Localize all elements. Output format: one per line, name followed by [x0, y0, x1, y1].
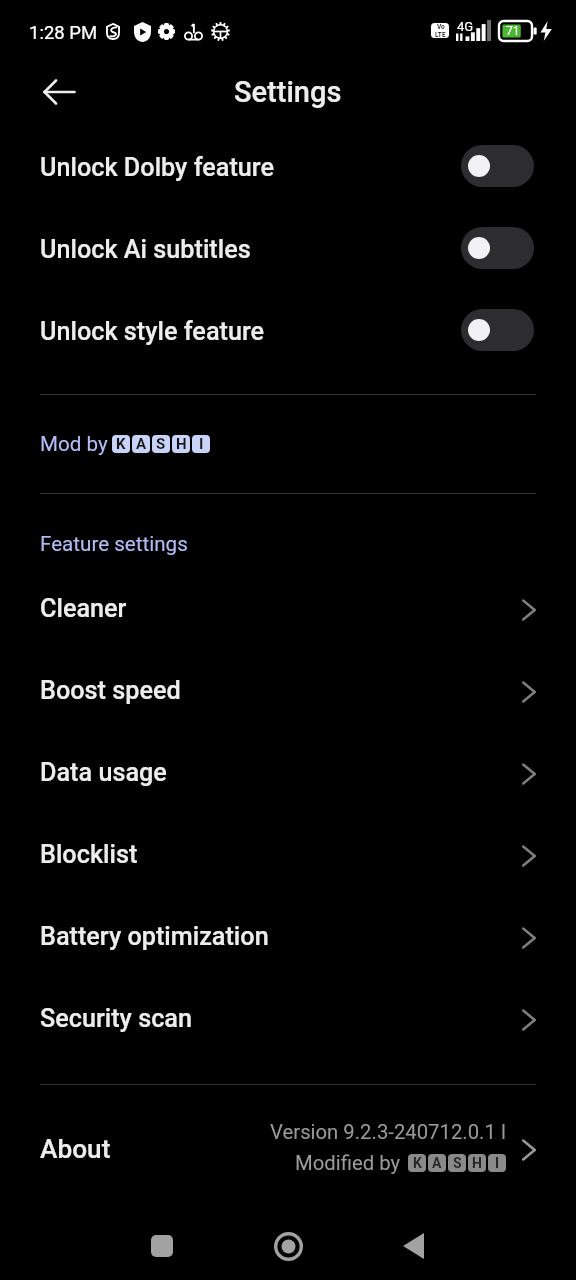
- button[interactable]: Back: [387, 1220, 439, 1272]
- staticText: Modified by: [295, 1151, 401, 1175]
- staticText: H: [472, 1155, 482, 1171]
- staticText: Boost speed: [40, 676, 514, 706]
- staticText: Unlock Ai subtitles: [40, 235, 463, 265]
- staticText: S: [453, 1155, 462, 1171]
- staticText: Mod by: [40, 432, 108, 456]
- button[interactable]: Back: [36, 69, 82, 115]
- staticText: Feature settings: [40, 532, 188, 556]
- staticText: Vo: [437, 23, 445, 31]
- staticText: I: [495, 1155, 500, 1171]
- staticText: Battery optimization: [40, 922, 514, 952]
- staticText: Settings: [234, 75, 342, 109]
- staticText: Version 9.2.3-240712.0.1 l: [270, 1120, 506, 1144]
- button[interactable]: Blocklist: [0, 812, 576, 894]
- staticText: Data usage: [40, 758, 514, 788]
- staticText: Cleaner: [40, 594, 514, 624]
- staticText: Unlock Dolby feature: [40, 153, 463, 183]
- staticText: K: [413, 1155, 422, 1171]
- staticText: S: [156, 435, 166, 453]
- staticText: H: [176, 435, 187, 453]
- button[interactable]: Home: [262, 1220, 314, 1272]
- button[interactable]: Security scan: [0, 976, 576, 1058]
- staticText: A: [432, 1155, 442, 1171]
- button[interactable]: Cleaner: [0, 566, 576, 648]
- staticText: 4G: [457, 19, 474, 34]
- staticText: About: [40, 1134, 111, 1165]
- button[interactable]: Data usage: [0, 730, 576, 812]
- button[interactable]: Unlock Ai subtitles: [0, 207, 576, 289]
- button[interactable]: Unlock Dolby feature: [0, 125, 576, 207]
- button[interactable]: About: [0, 1085, 576, 1209]
- staticText: K: [116, 435, 126, 453]
- button[interactable]: Recents: [136, 1220, 188, 1272]
- button[interactable]: Battery optimization: [0, 894, 576, 976]
- button[interactable]: Unlock style feature: [0, 289, 576, 371]
- staticText: Blocklist: [40, 840, 514, 870]
- staticText: 71: [506, 24, 520, 38]
- button[interactable]: Mod by: [40, 432, 210, 456]
- staticText: Unlock style feature: [40, 317, 463, 347]
- staticText: Security scan: [40, 1004, 514, 1034]
- staticText: 1:28 PM: [29, 22, 98, 44]
- staticText: LTE: [435, 31, 446, 38]
- button[interactable]: Boost speed: [0, 648, 576, 730]
- staticText: A: [136, 435, 147, 453]
- staticText: I: [199, 435, 204, 453]
